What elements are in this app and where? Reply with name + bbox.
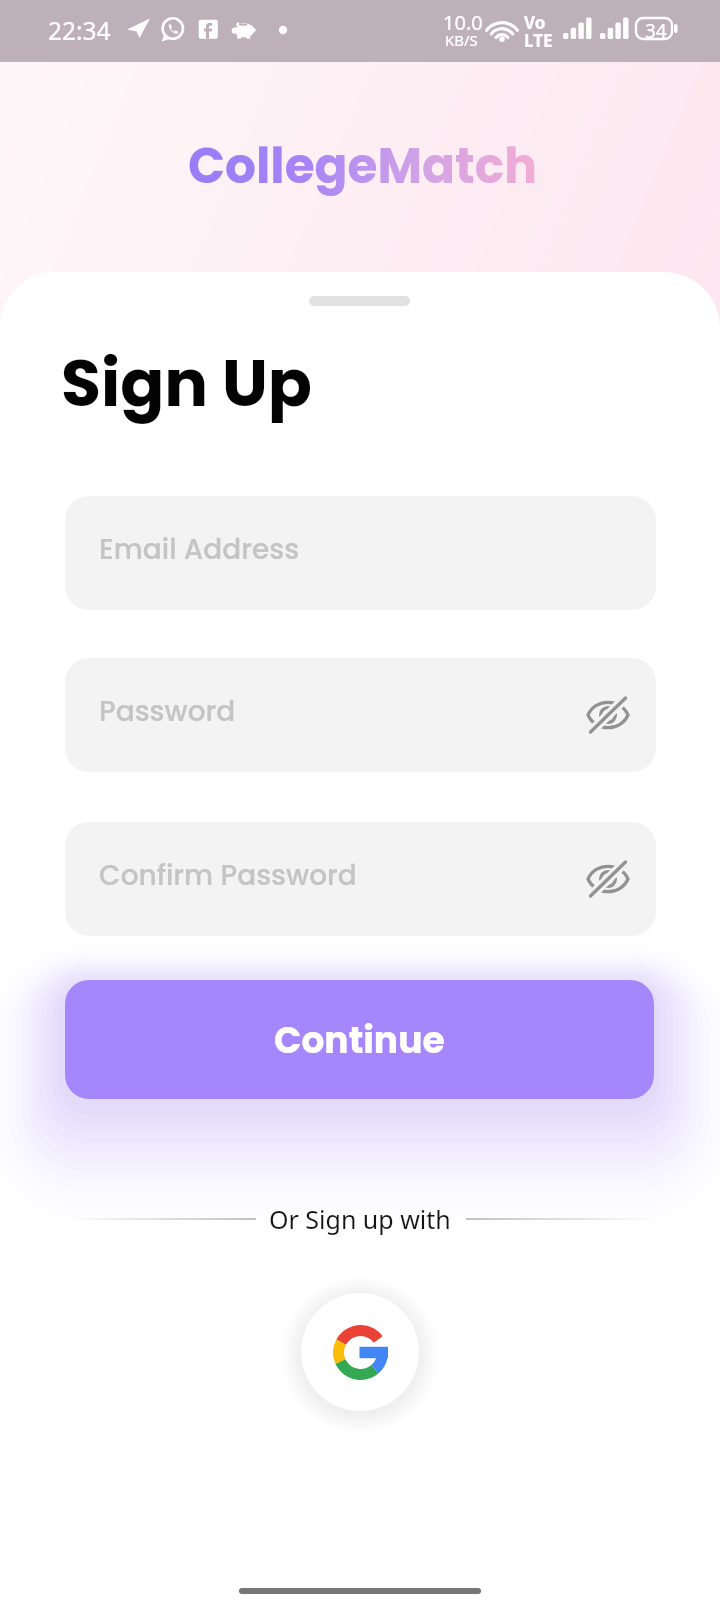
button[interactable]: Show password xyxy=(580,687,636,743)
staticText: 10.0 xyxy=(443,9,483,36)
staticText: 34 xyxy=(645,18,667,44)
button[interactable]: Password xyxy=(65,658,656,772)
staticText: Email Address xyxy=(99,530,300,569)
button[interactable]: Show password xyxy=(580,851,636,907)
staticText: Password xyxy=(99,692,236,731)
button[interactable]: Sign up with Google xyxy=(301,1293,419,1411)
button[interactable]: Continue xyxy=(65,980,654,1099)
button[interactable]: Email Address xyxy=(65,496,656,610)
staticText: Confirm Password xyxy=(99,856,357,895)
staticText: Sign Up xyxy=(61,338,312,429)
staticText: Continue xyxy=(274,1015,445,1065)
staticText: Vo xyxy=(524,11,546,34)
staticText: CollegeMatch xyxy=(188,132,538,200)
staticText: Or Sign up with xyxy=(269,1202,451,1236)
staticText: KB/S xyxy=(445,30,478,50)
staticText: 22:34 xyxy=(48,14,111,47)
staticText: LTE xyxy=(524,29,553,52)
button[interactable]: Confirm Password xyxy=(65,822,656,936)
